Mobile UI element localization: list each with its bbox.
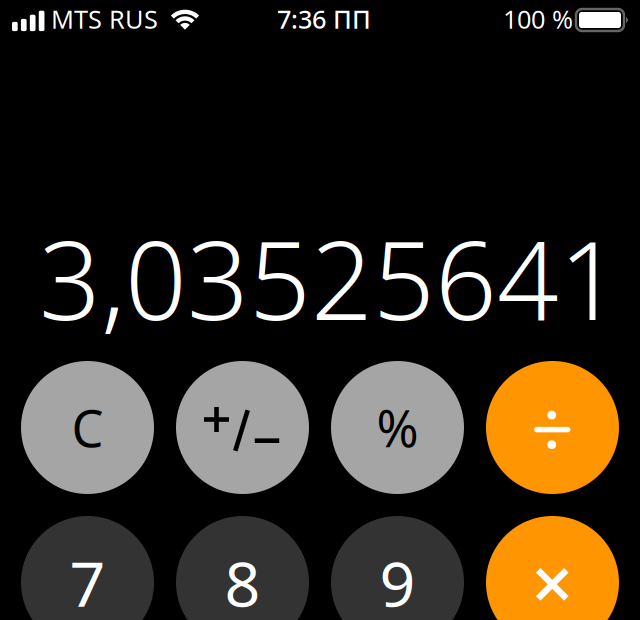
button[interactable]: Divide	[486, 361, 619, 494]
staticText: 3,03525641	[39, 206, 621, 350]
button[interactable]: Percent	[331, 361, 464, 494]
staticText: 8	[224, 541, 260, 620]
button[interactable]: Clear	[21, 361, 154, 494]
staticText: 100 %	[503, 2, 573, 36]
button[interactable]: 8	[176, 516, 309, 620]
button[interactable]: 7	[21, 516, 154, 620]
staticText: C	[71, 394, 103, 461]
staticText: 9	[379, 541, 415, 620]
button[interactable]: Plus minus	[176, 361, 309, 494]
staticText: MTS RUS	[51, 2, 158, 36]
button[interactable]: 9	[331, 516, 464, 620]
staticText: 7:36 ПП	[277, 2, 371, 36]
staticText: %	[376, 394, 418, 461]
button[interactable]: Multiply	[486, 516, 619, 620]
staticText: 7	[69, 541, 105, 620]
